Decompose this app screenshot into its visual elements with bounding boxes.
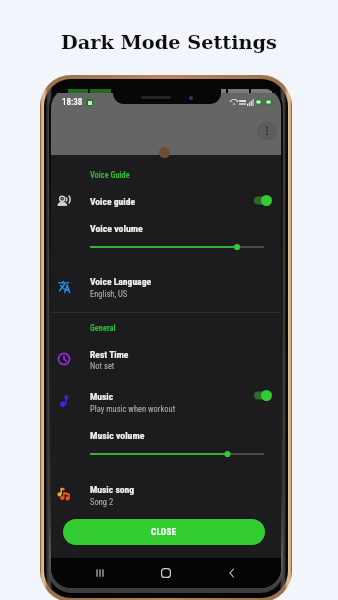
- staticText: Dark Mode Settings: [61, 31, 277, 54]
- staticText: Rest Time: [90, 349, 129, 360]
- staticText: 18:38: [62, 97, 83, 108]
- button[interactable]: More options: [257, 121, 277, 141]
- staticText: General: [90, 323, 116, 333]
- button[interactable]: Recents: [89, 562, 111, 584]
- staticText: Voice Guide: [90, 170, 130, 180]
- staticText: Music: [90, 391, 114, 402]
- button[interactable]: Back: [221, 562, 243, 584]
- staticText: Not set: [90, 361, 115, 371]
- staticText: Play music when workout: [90, 404, 176, 414]
- staticText: English, US: [90, 289, 128, 299]
- button[interactable]: CLOSE: [63, 519, 265, 545]
- staticText: Music song: [90, 484, 135, 495]
- button[interactable]: Home: [155, 562, 177, 584]
- staticText: CLOSE: [151, 527, 177, 538]
- button[interactable]: Music: [51, 387, 281, 416]
- button[interactable]: Rest Time: [51, 345, 281, 373]
- staticText: Voice guide: [90, 196, 136, 207]
- staticText: Voice volume: [90, 223, 143, 234]
- button[interactable]: Music song: [51, 480, 281, 509]
- staticText: Voice Language: [90, 276, 152, 287]
- staticText: Song 2: [90, 497, 114, 507]
- staticText: Music volume: [90, 430, 145, 441]
- button[interactable]: Voice guide: [51, 192, 281, 210]
- button[interactable]: Voice Language: [51, 272, 281, 301]
